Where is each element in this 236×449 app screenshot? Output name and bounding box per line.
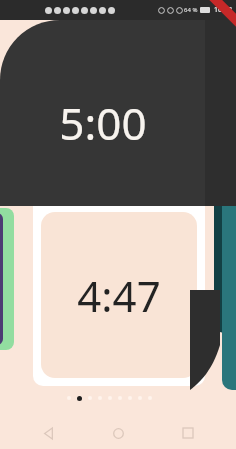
button[interactable] — [214, 95, 236, 333]
button[interactable]: 5:00 — [0, 20, 205, 206]
button[interactable]: Back — [26, 417, 70, 449]
button[interactable]: 4:47 — [33, 206, 205, 386]
staticText: 16:38 — [214, 5, 232, 15]
button[interactable]: Home — [96, 417, 140, 449]
button[interactable]: Recent apps — [166, 417, 210, 449]
button[interactable] — [222, 188, 236, 390]
staticText: 4:47 — [77, 267, 161, 324]
staticText: 5:00 — [59, 93, 147, 153]
staticText: 64 % — [184, 6, 198, 14]
button[interactable] — [0, 208, 14, 350]
